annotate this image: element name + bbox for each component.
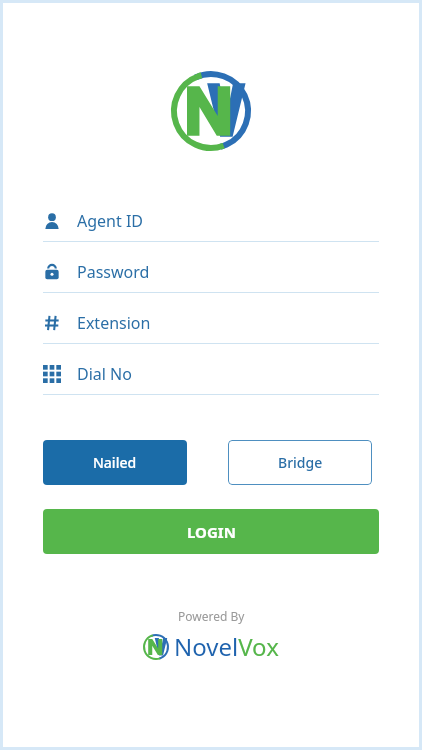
staticText: Agent ID	[77, 210, 144, 232]
button[interactable]: Dial number	[43, 360, 379, 395]
button[interactable]: LOGIN	[43, 509, 379, 554]
staticText: Bridge	[278, 453, 323, 472]
button[interactable]: Agent	[43, 207, 379, 242]
button[interactable]: Password	[43, 258, 379, 293]
button[interactable]: Bridge	[228, 440, 372, 485]
button[interactable]: Extension	[43, 309, 379, 344]
staticText: Powered By	[178, 608, 245, 624]
staticText: Password	[77, 261, 150, 283]
staticText: Nailed	[93, 453, 137, 472]
button[interactable]: Nailed	[43, 440, 187, 485]
staticText: Extension	[77, 312, 151, 334]
other: Password	[43, 263, 61, 281]
other: Agent	[43, 212, 61, 230]
staticText: Dial No	[77, 363, 132, 385]
staticText: NovelVox	[174, 630, 279, 663]
other: Extension	[43, 314, 61, 332]
other: Dial number	[43, 365, 61, 383]
staticText: LOGIN	[187, 522, 236, 542]
